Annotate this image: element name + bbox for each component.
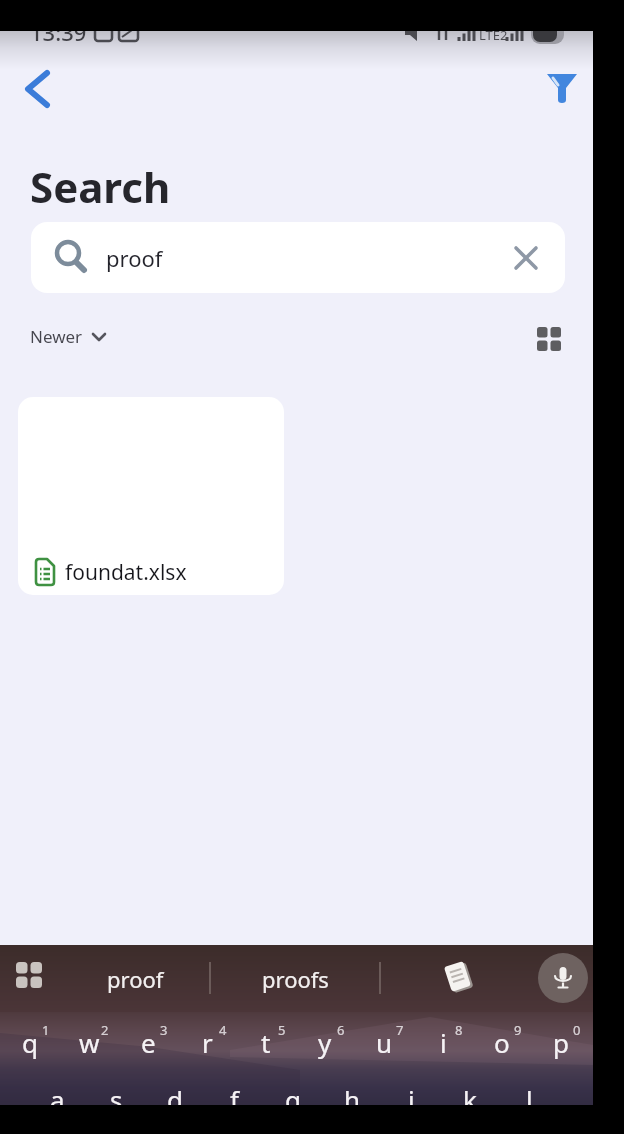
staticText: q (22, 1025, 38, 1060)
staticText: y (318, 1025, 332, 1060)
button[interactable]: r (181, 1018, 233, 1066)
staticText: 8 (455, 1021, 463, 1039)
staticText: a (50, 1082, 65, 1117)
button[interactable] (536, 326, 564, 354)
staticText: e (141, 1025, 156, 1060)
staticText: proof (107, 964, 164, 994)
staticText: 7 (396, 1021, 404, 1039)
button[interactable] (538, 953, 588, 1003)
staticText: 5 (278, 1021, 286, 1039)
button[interactable]: q (4, 1018, 56, 1066)
staticText: g (285, 1082, 301, 1117)
staticText: p (553, 1025, 569, 1060)
staticText: i (440, 1025, 447, 1060)
staticText: 1 (42, 1021, 50, 1039)
staticText: 2 (101, 1021, 109, 1039)
staticText: k (463, 1082, 477, 1117)
staticText: h (344, 1082, 361, 1117)
staticText: u (376, 1025, 393, 1060)
staticText: proofs (262, 964, 329, 994)
staticText: j (408, 1082, 415, 1117)
button[interactable]: t (240, 1018, 292, 1066)
staticText: Newer (30, 325, 83, 348)
button[interactable]: w (63, 1018, 115, 1066)
button[interactable]: e (122, 1018, 174, 1066)
staticText: 0 (573, 1021, 581, 1039)
staticText: 13:39 (30, 17, 87, 47)
button[interactable] (441, 957, 477, 999)
button[interactable]: l (503, 1075, 555, 1123)
staticText: 9 (514, 1021, 522, 1039)
staticText: 3 (160, 1021, 168, 1039)
button[interactable]: proof (80, 953, 190, 1005)
staticText: l (526, 1082, 533, 1117)
staticText: t (261, 1025, 271, 1060)
staticText: LTE2 (479, 26, 508, 44)
button[interactable]: f (208, 1075, 260, 1123)
staticText: d (167, 1082, 183, 1117)
button[interactable]: j (385, 1075, 437, 1123)
button[interactable]: foundat.xlsx (18, 397, 284, 595)
staticText: proof (106, 243, 163, 273)
staticText: Search (30, 158, 171, 215)
staticText: w (79, 1025, 100, 1060)
button[interactable]: u (358, 1018, 410, 1066)
button[interactable]: proofs (240, 953, 350, 1005)
staticText: r (202, 1025, 213, 1060)
button[interactable]: p (535, 1018, 587, 1066)
button[interactable]: h (326, 1075, 378, 1123)
staticText: 4 (219, 1021, 227, 1039)
button[interactable]: a (31, 1075, 83, 1123)
button[interactable]: Newer (30, 325, 106, 348)
button[interactable] (540, 66, 584, 110)
staticText: s (110, 1082, 123, 1117)
button[interactable]: g (267, 1075, 319, 1123)
button[interactable]: proof (31, 222, 565, 293)
staticText: f (230, 1082, 239, 1117)
staticText: 6 (337, 1021, 345, 1039)
button[interactable] (18, 64, 58, 114)
staticText: foundat.xlsx (65, 558, 187, 587)
button[interactable] (511, 243, 541, 273)
button[interactable]: d (149, 1075, 201, 1123)
button[interactable]: y (299, 1018, 351, 1066)
button[interactable] (16, 962, 43, 990)
button[interactable]: k (444, 1075, 496, 1123)
button[interactable]: i (417, 1018, 469, 1066)
staticText: o (494, 1025, 510, 1060)
button[interactable]: s (90, 1075, 142, 1123)
button[interactable]: o (476, 1018, 528, 1066)
